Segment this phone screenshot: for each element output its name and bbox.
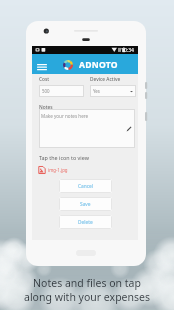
button[interactable]: img-1.jpg <box>38 166 68 174</box>
staticText: Device Active <box>90 76 121 83</box>
other: Edit notes <box>126 126 132 132</box>
button[interactable]: Delete <box>59 215 112 229</box>
button[interactable]: Open navigation menu <box>34 59 50 75</box>
staticText: ADNOTO <box>79 59 118 71</box>
staticText: Notes <box>39 104 53 111</box>
staticText: Yes <box>93 88 100 94</box>
staticText: 10:34 <box>121 47 135 54</box>
staticText: Cancel <box>78 183 93 190</box>
staticText: along with your expenses <box>24 290 150 304</box>
button[interactable]: Make your notes here <box>39 109 135 148</box>
staticText: Notes and files on tap <box>33 276 141 290</box>
staticText: img-1.jpg <box>48 167 68 173</box>
button[interactable]: Save <box>59 197 112 211</box>
staticText: Tap the icon to view <box>39 154 89 161</box>
staticText: Save <box>80 201 91 208</box>
staticText: Delete <box>78 219 93 226</box>
staticText: 500 <box>42 88 50 94</box>
button[interactable]: Cancel <box>59 179 112 193</box>
button[interactable]: Yes <box>90 85 136 97</box>
staticText: Cost <box>39 76 50 83</box>
button[interactable]: 500 <box>39 85 84 97</box>
staticText: Make your notes here <box>41 113 89 119</box>
